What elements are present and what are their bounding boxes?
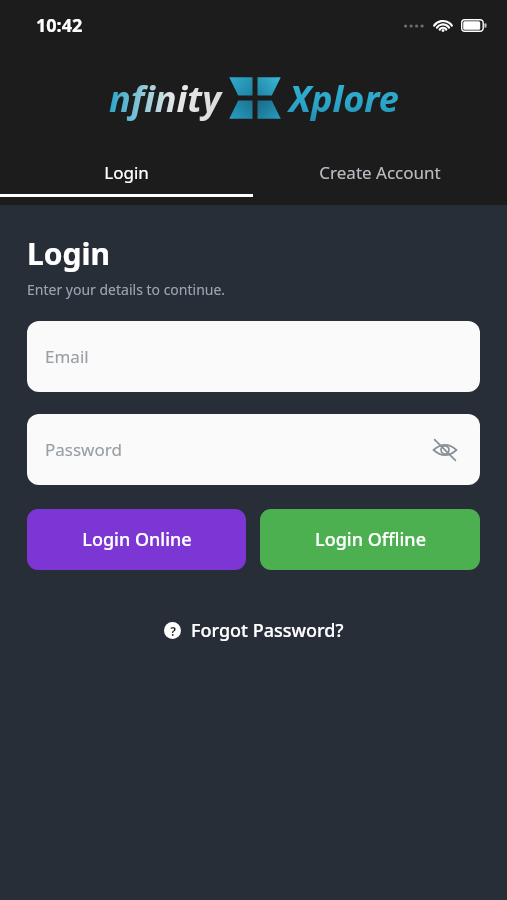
staticText: Login bbox=[27, 233, 110, 274]
staticText: Xplore bbox=[289, 74, 399, 123]
staticText: Login bbox=[104, 161, 149, 184]
button[interactable]: Login Online bbox=[27, 509, 246, 570]
button[interactable]: Login Offline bbox=[260, 509, 480, 570]
staticText: Login Offline bbox=[315, 527, 426, 552]
staticText: Email bbox=[45, 345, 89, 368]
staticText: 10:42 bbox=[36, 13, 83, 38]
staticText: Forgot Password? bbox=[191, 618, 344, 643]
button[interactable]: Show password bbox=[428, 433, 462, 467]
staticText: nfinity bbox=[109, 74, 221, 123]
staticText: Create Account bbox=[319, 161, 441, 184]
staticText: Password bbox=[45, 438, 122, 461]
button[interactable]: Email bbox=[27, 321, 480, 392]
staticText: ? bbox=[170, 623, 176, 639]
button[interactable]: Create Account bbox=[253, 150, 507, 194]
staticText: Enter your details to continue. bbox=[27, 280, 226, 299]
button[interactable]: Login bbox=[0, 150, 253, 194]
staticText: Login Online bbox=[82, 527, 192, 552]
button[interactable]: ? bbox=[156, 612, 352, 649]
button[interactable]: Password bbox=[27, 414, 480, 485]
